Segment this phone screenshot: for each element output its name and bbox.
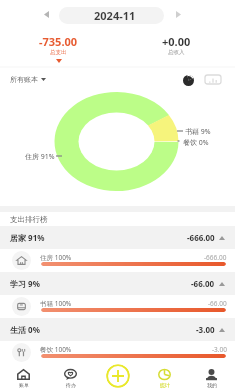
button[interactable]: Previous month [38, 6, 54, 22]
staticText: -3.00 [196, 324, 215, 335]
staticText: 书籍 100% [40, 299, 72, 308]
button[interactable]: Pie chart view [180, 72, 197, 89]
staticText: 总收入 [168, 49, 185, 56]
button[interactable]: 生活 0% [10, 318, 225, 341]
staticText: 账单 [19, 382, 29, 388]
button[interactable]: 统计 [141, 364, 188, 390]
button[interactable]: 学习 9% [10, 272, 225, 295]
button[interactable]: 居家 91% [10, 226, 225, 249]
staticText: -66.00 [191, 278, 215, 289]
staticText: -66.00 [208, 299, 227, 308]
staticText: 住房 91% [25, 152, 55, 162]
staticText: 餐饮 100% [40, 345, 72, 354]
button[interactable]: Next month [170, 6, 186, 22]
button[interactable]: +0.00 [117, 28, 235, 66]
button[interactable]: 账单 [0, 364, 47, 390]
staticText: -735.00 [39, 34, 78, 49]
staticText: 所有账本 [10, 75, 38, 84]
staticText: 待办 [66, 382, 76, 388]
staticText: 餐饮 0% [183, 138, 209, 148]
button[interactable]: 待办 [47, 364, 94, 390]
button[interactable]: 书籍 100% [0, 295, 235, 318]
staticText: 2024-11 [94, 8, 136, 23]
button[interactable]: Add record [106, 364, 130, 388]
button[interactable]: 2024-11 [59, 7, 164, 24]
staticText: 我的 [207, 382, 217, 388]
button[interactable]: 所有账本 [10, 75, 46, 84]
staticText: +0.00 [162, 34, 191, 49]
staticText: 总支出 [50, 49, 67, 56]
staticText: 统计 [160, 382, 170, 388]
staticText: 书籍 9% [185, 127, 211, 137]
button[interactable]: 餐饮 100% [0, 341, 235, 364]
staticText: 居家 91% [10, 232, 45, 243]
button[interactable]: 住房 100% [0, 249, 235, 272]
button[interactable]: Bar chart view [203, 72, 223, 86]
staticText: 住房 100% [40, 253, 72, 262]
staticText: -666.00 [204, 253, 227, 262]
staticText: -666.00 [187, 232, 215, 243]
staticText: 学习 9% [10, 278, 40, 289]
staticText: -3.00 [212, 345, 227, 354]
button[interactable]: 我的 [188, 364, 235, 390]
button[interactable]: -735.00 [0, 28, 117, 66]
staticText: 生活 0% [10, 324, 40, 335]
staticText: 支出排行榜 [10, 215, 48, 224]
